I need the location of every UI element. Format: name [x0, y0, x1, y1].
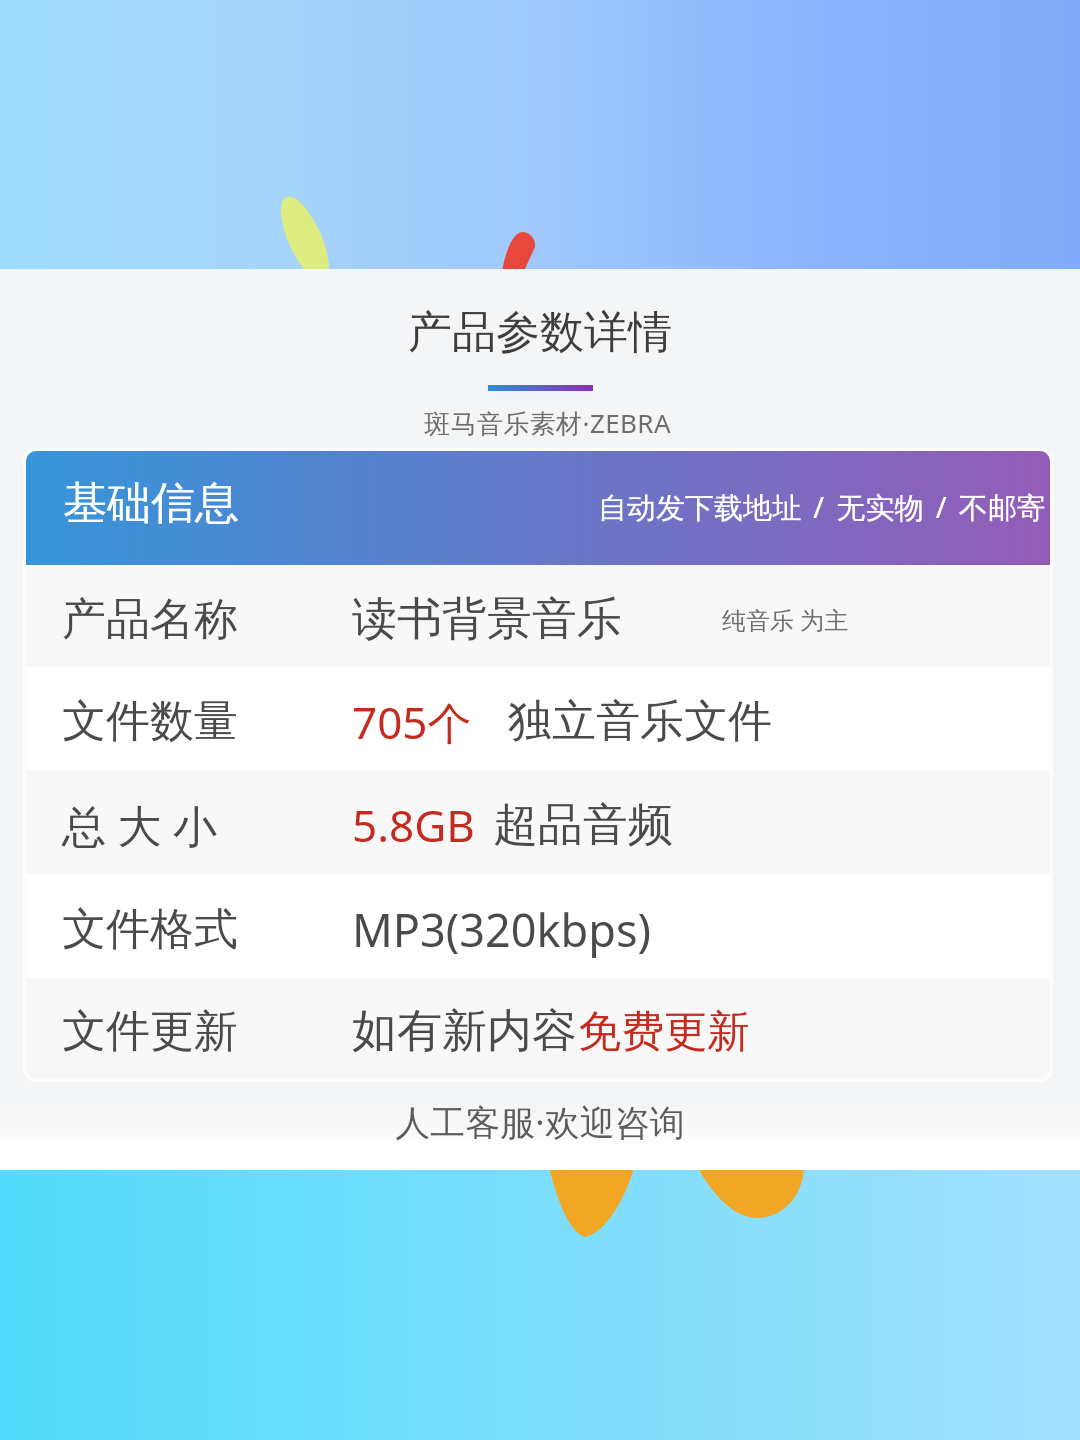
staticText: 5.8GB: [352, 795, 475, 855]
staticText: 独立音乐文件: [508, 694, 772, 749]
button[interactable]: 文件更新: [26, 978, 1050, 1079]
button[interactable]: 人工客服·欢迎咨询: [390, 1092, 690, 1148]
staticText: 免费更新: [578, 1005, 750, 1059]
button[interactable]: 基础信息: [26, 451, 1050, 565]
staticText: 人工客服·欢迎咨询: [395, 1098, 685, 1146]
staticText: 如有新内容: [352, 1003, 577, 1060]
staticText: MP3(320kbps): [352, 899, 651, 960]
staticText: 基础信息: [63, 476, 239, 531]
staticText: 705个: [352, 692, 472, 752]
staticText: 产品名称: [62, 592, 238, 647]
staticText: 读书背景音乐: [352, 591, 622, 648]
staticText: 文件格式: [62, 902, 238, 957]
staticText: 总 大 小: [62, 795, 217, 855]
staticText: 产品参数详情: [0, 305, 1080, 360]
button[interactable]: 产品名称: [26, 565, 1050, 667]
staticText: 文件更新: [62, 1004, 238, 1059]
button[interactable]: 文件格式: [26, 874, 1050, 978]
staticText: 超品音频: [493, 797, 673, 854]
button[interactable]: 总 大 小: [26, 770, 1050, 874]
staticText: 文件数量: [62, 694, 238, 749]
staticText: 纯音乐 为主: [722, 603, 849, 636]
staticText: 自动发下载地址 / 无实物 / 不邮寄: [598, 487, 1046, 527]
button[interactable]: 文件数量: [26, 667, 1050, 770]
staticText: 斑马音乐素材·ZEBRA: [15, 405, 1080, 441]
